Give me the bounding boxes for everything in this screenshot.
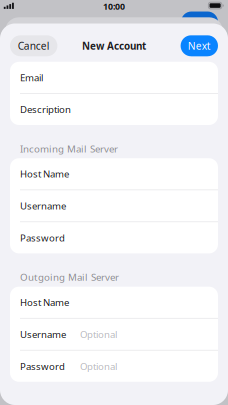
staticText: Optional [80, 360, 117, 373]
staticText: Email [20, 71, 43, 84]
button[interactable]: Password [10, 222, 218, 253]
staticText: Description [20, 103, 71, 116]
button[interactable]: Email [10, 62, 218, 93]
staticText: Host Name [20, 296, 69, 309]
staticText: Password [20, 231, 65, 244]
button[interactable]: Host Name [10, 287, 218, 318]
button[interactable]: Cancel [10, 35, 57, 56]
staticText: Optional [80, 328, 117, 341]
button[interactable]: Host Name [10, 158, 218, 189]
staticText: Incoming Mail Server [20, 142, 118, 155]
staticText: Next [188, 39, 211, 53]
staticText: Outgoing Mail Server [20, 270, 119, 284]
button[interactable]: Password [10, 351, 218, 382]
button[interactable]: Next [181, 35, 218, 56]
staticText: Password [20, 360, 65, 373]
staticText: Username [20, 199, 66, 212]
staticText: New Account [82, 39, 146, 52]
button[interactable]: Description [10, 94, 218, 125]
button[interactable]: Username [10, 319, 218, 350]
button[interactable]: Username [10, 190, 218, 221]
staticText: 10:00 [103, 0, 125, 12]
staticText: Username [20, 328, 66, 341]
staticText: Host Name [20, 167, 69, 180]
staticText: Cancel [18, 39, 50, 53]
